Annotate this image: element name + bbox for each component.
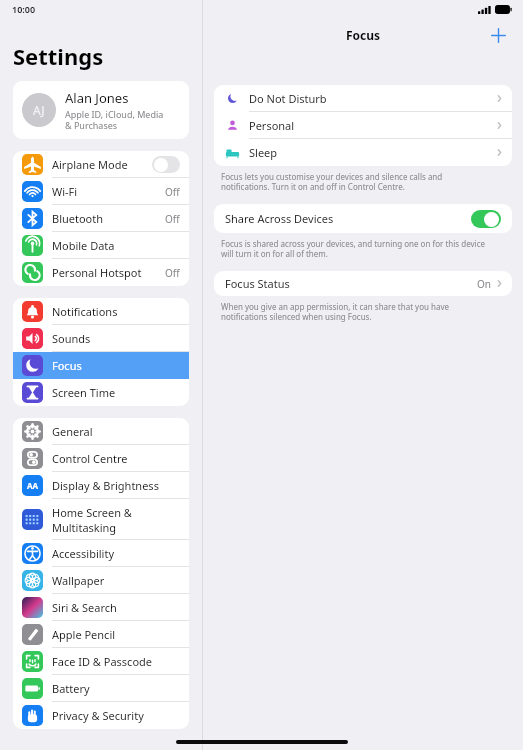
button[interactable]: Bluetooth — [13, 205, 189, 232]
button[interactable]: Add Focus — [486, 23, 510, 47]
button[interactable]: Mobile Data — [13, 232, 189, 259]
button[interactable]: Accessibility — [13, 540, 189, 567]
staticText: Focus lets you customise your devices an… — [221, 171, 443, 192]
button[interactable]: Share Across Devices — [214, 204, 512, 233]
button[interactable]: Personal Hotspot — [13, 259, 189, 286]
staticText: Accessibility — [52, 546, 115, 561]
button[interactable]: General — [13, 418, 189, 445]
staticText: Personal — [249, 118, 496, 133]
staticText: Focus — [346, 27, 381, 43]
staticText: Off — [165, 212, 180, 226]
staticText: Apple Pencil — [52, 627, 116, 642]
staticText: Focus Status — [225, 276, 477, 291]
button[interactable]: Control Centre — [13, 445, 189, 472]
staticText: Wi-Fi — [52, 184, 78, 199]
staticText: Sleep — [249, 145, 496, 160]
button[interactable]: Face ID & Passcode — [13, 648, 189, 675]
staticText: Focus is shared across your devices, and… — [221, 238, 485, 259]
staticText: Mobile Data — [52, 238, 115, 253]
staticText: AJ — [33, 102, 45, 118]
button[interactable]: Sleep — [214, 139, 512, 166]
staticText: Battery — [52, 681, 90, 696]
staticText: Off — [165, 185, 180, 199]
staticText: Privacy & Security — [52, 708, 144, 723]
button[interactable]: Share Across Devices — [471, 210, 501, 228]
staticText: Share Across Devices — [225, 211, 471, 226]
button[interactable]: AJ — [13, 81, 189, 139]
button[interactable]: Screen Time — [13, 379, 189, 406]
staticText: Face ID & Passcode — [52, 654, 153, 669]
button[interactable]: Privacy & Security — [13, 702, 189, 729]
staticText: Siri & Search — [52, 600, 117, 615]
staticText: Apple ID, iCloud, Media & Purchases — [65, 108, 164, 131]
staticText: 10:00 — [12, 3, 36, 15]
staticText: Screen Time — [52, 385, 116, 400]
staticText: Alan Jones — [65, 89, 129, 107]
button[interactable]: Battery — [13, 675, 189, 702]
staticText: Personal Hotspot — [52, 265, 142, 280]
staticText: Wallpaper — [52, 573, 105, 588]
staticText: AA — [27, 480, 39, 491]
button[interactable]: Wi-Fi — [13, 178, 189, 205]
button[interactable]: Focus — [13, 352, 189, 379]
staticText: Home Screen & Multitasking — [52, 505, 132, 535]
staticText: General — [52, 424, 93, 439]
button[interactable]: Airplane Mode — [152, 156, 180, 173]
staticText: Sounds — [52, 331, 91, 346]
staticText: Focus — [52, 358, 82, 373]
button[interactable]: Siri & Search — [13, 594, 189, 621]
button[interactable]: Airplane Mode — [13, 151, 189, 178]
button[interactable]: Apple Pencil — [13, 621, 189, 648]
staticText: Off — [165, 266, 180, 280]
staticText: Bluetooth — [52, 211, 104, 226]
button[interactable]: Notifications — [13, 298, 189, 325]
button[interactable]: Personal — [214, 112, 512, 139]
staticText: When you give an app permission, it can … — [221, 301, 450, 322]
button[interactable]: Do Not Disturb — [214, 85, 512, 112]
button[interactable]: Sounds — [13, 325, 189, 352]
staticText: On — [477, 277, 491, 291]
staticText: Do Not Disturb — [249, 91, 496, 106]
button[interactable]: AA — [13, 472, 189, 499]
button[interactable]: Wallpaper — [13, 567, 189, 594]
staticText: Notifications — [52, 304, 118, 319]
staticText: Display & Brightness — [52, 478, 159, 493]
button[interactable]: Focus Status — [214, 271, 512, 296]
staticText: Settings — [13, 41, 104, 71]
staticText: Airplane Mode — [52, 157, 128, 172]
button[interactable]: Home Screen & Multitasking — [13, 499, 189, 540]
staticText: Control Centre — [52, 451, 128, 466]
